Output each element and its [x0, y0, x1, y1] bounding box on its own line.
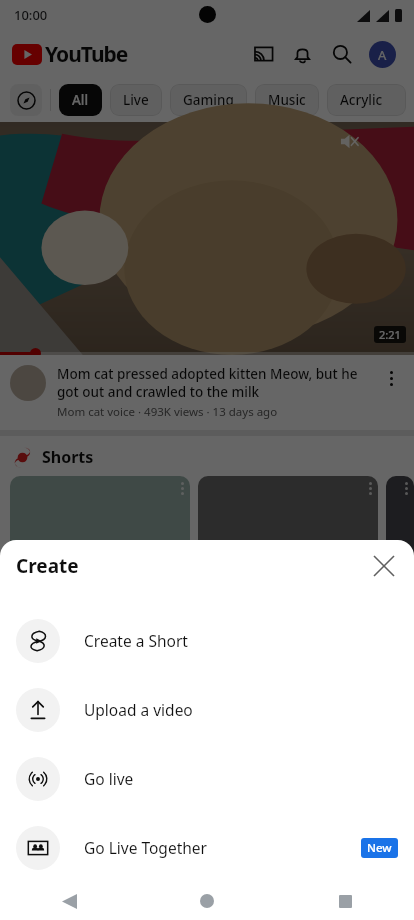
button[interactable]: Go live: [0, 744, 414, 813]
button[interactable]: Gaming: [170, 84, 247, 116]
button[interactable]: Back: [0, 882, 138, 920]
staticText: 10:00: [14, 6, 48, 24]
button[interactable]: Mute: [336, 128, 362, 154]
staticText: Go Live Together: [84, 837, 207, 858]
button[interactable]: More options: [378, 365, 404, 391]
button[interactable]: Go Live Together: [0, 813, 414, 882]
staticText: Shorts: [42, 446, 94, 468]
staticText: 2:21: [379, 327, 401, 342]
staticText: All: [72, 91, 89, 109]
staticText: A: [378, 46, 387, 64]
button[interactable]: [198, 476, 378, 596]
staticText: Mom cat voice · 493K views · 13 days ago: [57, 404, 278, 420]
staticText: Create: [16, 553, 79, 579]
button[interactable]: All: [59, 84, 102, 116]
button[interactable]: Live: [110, 84, 162, 116]
staticText: Gaming: [183, 91, 234, 109]
staticText: Live: [123, 91, 149, 109]
button[interactable]: Cast: [242, 34, 282, 74]
button[interactable]: YouTube: [12, 40, 128, 69]
button[interactable]: Music: [255, 84, 319, 116]
button[interactable]: Acrylic paints: [327, 84, 406, 116]
button[interactable]: Recents: [276, 882, 414, 920]
button[interactable]: [386, 476, 414, 596]
button[interactable]: Account: [362, 34, 402, 74]
button[interactable]: [10, 476, 190, 596]
staticText: Mom cat pressed adopted kitten Meow, but…: [57, 365, 378, 401]
staticText: Create a Short: [84, 630, 188, 651]
staticText: Acrylic paints: [340, 91, 393, 109]
button[interactable]: Explore: [10, 84, 42, 116]
staticText: Go live: [84, 768, 134, 789]
button[interactable]: Notifications: [282, 34, 322, 74]
staticText: Upload a video: [84, 699, 193, 720]
button[interactable]: Home: [138, 882, 276, 920]
staticText: New: [367, 840, 392, 856]
button[interactable]: Close: [364, 546, 404, 586]
button[interactable]: Upload a video: [0, 675, 414, 744]
staticText: Music: [268, 91, 306, 109]
staticText: YouTube: [45, 40, 128, 69]
button[interactable]: Create a Short: [0, 606, 414, 675]
button[interactable]: Search: [322, 34, 362, 74]
